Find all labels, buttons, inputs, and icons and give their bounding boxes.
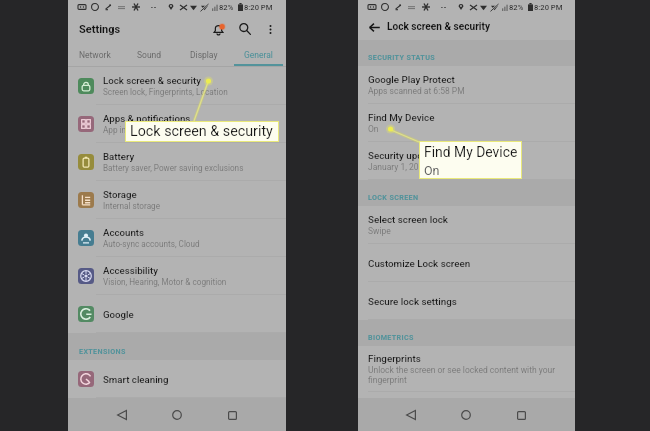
- staticText: Secure lock settings: [368, 296, 457, 307]
- button[interactable]: Battery: [68, 143, 286, 181]
- staticText: Google Play Protect: [368, 74, 455, 85]
- staticText: Apps & notifications: [103, 113, 191, 124]
- button[interactable]: Back: [112, 405, 132, 425]
- button[interactable]: Notifications: [209, 20, 227, 38]
- staticText: SECURITY STATUS: [368, 53, 436, 61]
- button[interactable]: Recent apps: [511, 405, 531, 425]
- button[interactable]: Back: [366, 19, 382, 35]
- button[interactable]: Google Play Protect: [358, 66, 575, 104]
- button[interactable]: Lock screen & security: [68, 67, 286, 105]
- button[interactable]: Home: [456, 405, 476, 425]
- staticText: BIOMETRICS: [368, 333, 414, 341]
- staticText: Screen lock, Fingerprints, Location: [103, 87, 228, 97]
- staticText: LOCK SCREEN: [368, 193, 419, 201]
- staticText: App info, Notifications: [103, 125, 184, 135]
- button[interactable]: Secure lock settings: [358, 282, 575, 320]
- button[interactable]: General: [231, 44, 286, 66]
- staticText: Settings: [79, 23, 121, 36]
- staticText: Lock screen & security: [130, 123, 273, 140]
- staticText: Apps scanned at 6:58 PM: [368, 86, 465, 96]
- button[interactable]: Accounts: [68, 219, 286, 257]
- button[interactable]: Apps & notifications: [68, 105, 286, 143]
- staticText: On: [368, 124, 379, 134]
- staticText: Battery: [103, 151, 135, 162]
- button[interactable]: Search: [236, 20, 254, 38]
- staticText: Find My Device: [368, 112, 435, 123]
- staticText: Fingerprints: [368, 353, 421, 364]
- staticText: EXTENSIONS: [79, 347, 126, 355]
- staticText: Vision, Hearing, Motor & cognition: [103, 277, 227, 287]
- staticText: January 1, 2019: [368, 162, 429, 172]
- staticText: Find My Device: [424, 144, 518, 160]
- staticText: Sound: [137, 50, 162, 60]
- staticText: 82%: [219, 3, 234, 12]
- staticText: Storage: [103, 189, 137, 200]
- button[interactable]: Security update: [358, 142, 575, 180]
- button[interactable]: Accessibility: [68, 257, 286, 295]
- button[interactable]: Back: [401, 405, 421, 425]
- button[interactable]: Smart cleaning: [68, 360, 286, 398]
- button[interactable]: Google: [68, 295, 286, 333]
- button[interactable]: More options: [262, 21, 278, 37]
- staticText: Lock screen & security: [387, 21, 490, 33]
- staticText: Auto-sync accounts, Cloud: [103, 239, 200, 249]
- button[interactable]: Recent apps: [222, 405, 242, 425]
- staticText: Display: [190, 50, 218, 60]
- staticText: Security update: [368, 150, 437, 161]
- staticText: 82%: [509, 3, 524, 12]
- staticText: General: [244, 50, 273, 60]
- staticText: Smart cleaning: [103, 374, 169, 385]
- staticText: Swipe: [368, 226, 391, 236]
- staticText: Network: [79, 50, 111, 60]
- button[interactable]: Customize Lock screen: [358, 244, 575, 282]
- staticText: On: [424, 163, 440, 178]
- staticText: Internal storage: [103, 201, 161, 211]
- staticText: Customize Lock screen: [368, 258, 471, 269]
- button[interactable]: Lock screen & security: [126, 122, 278, 141]
- button[interactable]: Network: [68, 44, 122, 66]
- staticText: Google: [103, 309, 134, 320]
- button[interactable]: Sound: [122, 44, 176, 66]
- button[interactable]: Fingerprints: [358, 346, 575, 392]
- staticText: Unlock the screen or see locked content …: [368, 365, 561, 385]
- button[interactable]: Find My Device: [358, 104, 575, 142]
- button[interactable]: Home: [167, 405, 187, 425]
- staticText: 8:20 PM: [534, 3, 563, 12]
- staticText: 8:20 PM: [244, 3, 273, 12]
- button[interactable]: Storage: [68, 181, 286, 219]
- button[interactable]: Select screen lock: [358, 206, 575, 244]
- staticText: Accounts: [103, 227, 145, 238]
- staticText: Lock screen & security: [103, 75, 201, 86]
- staticText: Battery saver, Power saving exclusions: [103, 163, 244, 173]
- button[interactable]: Find My Device: [420, 142, 521, 178]
- staticText: Select screen lock: [368, 214, 448, 225]
- staticText: Accessibility: [103, 265, 158, 276]
- button[interactable]: Display: [176, 44, 231, 66]
